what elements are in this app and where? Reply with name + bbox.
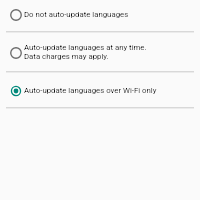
staticText: Auto-update languages at any time. bbox=[24, 43, 147, 52]
staticText: Data charges may apply. bbox=[24, 52, 109, 61]
staticText: Do not auto-update languages bbox=[24, 10, 129, 19]
button[interactable]: Auto-update languages over Wi-Fi only bbox=[0, 73, 200, 107]
button[interactable]: Auto-update languages at any time. bbox=[0, 33, 200, 71]
button[interactable]: Do not auto-update languages bbox=[0, 0, 200, 31]
staticText: Auto-update languages over Wi-Fi only bbox=[24, 86, 157, 95]
